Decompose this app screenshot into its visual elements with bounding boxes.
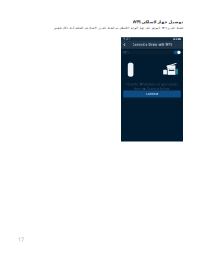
staticText: 17 — [18, 236, 24, 243]
staticText: WPS — [123, 51, 128, 54]
staticText: 9:41 — [123, 37, 130, 41]
button[interactable]: Connect — [123, 90, 181, 97]
staticText: Connect a Device with WPS — [132, 43, 171, 46]
staticText: then tap Connect below. — [134, 87, 170, 91]
staticText: Press the WPS button on your router, — [125, 83, 178, 86]
button[interactable]: WPS toggle — [174, 50, 181, 54]
button[interactable]: Back — [121, 41, 128, 49]
staticText: اضغط على زر WPS الموجود على جهاز التوجيه… — [53, 26, 183, 29]
staticText: توصيل جهاز لاسلكي WPS — [132, 19, 183, 24]
staticText: Connect — [146, 92, 158, 96]
